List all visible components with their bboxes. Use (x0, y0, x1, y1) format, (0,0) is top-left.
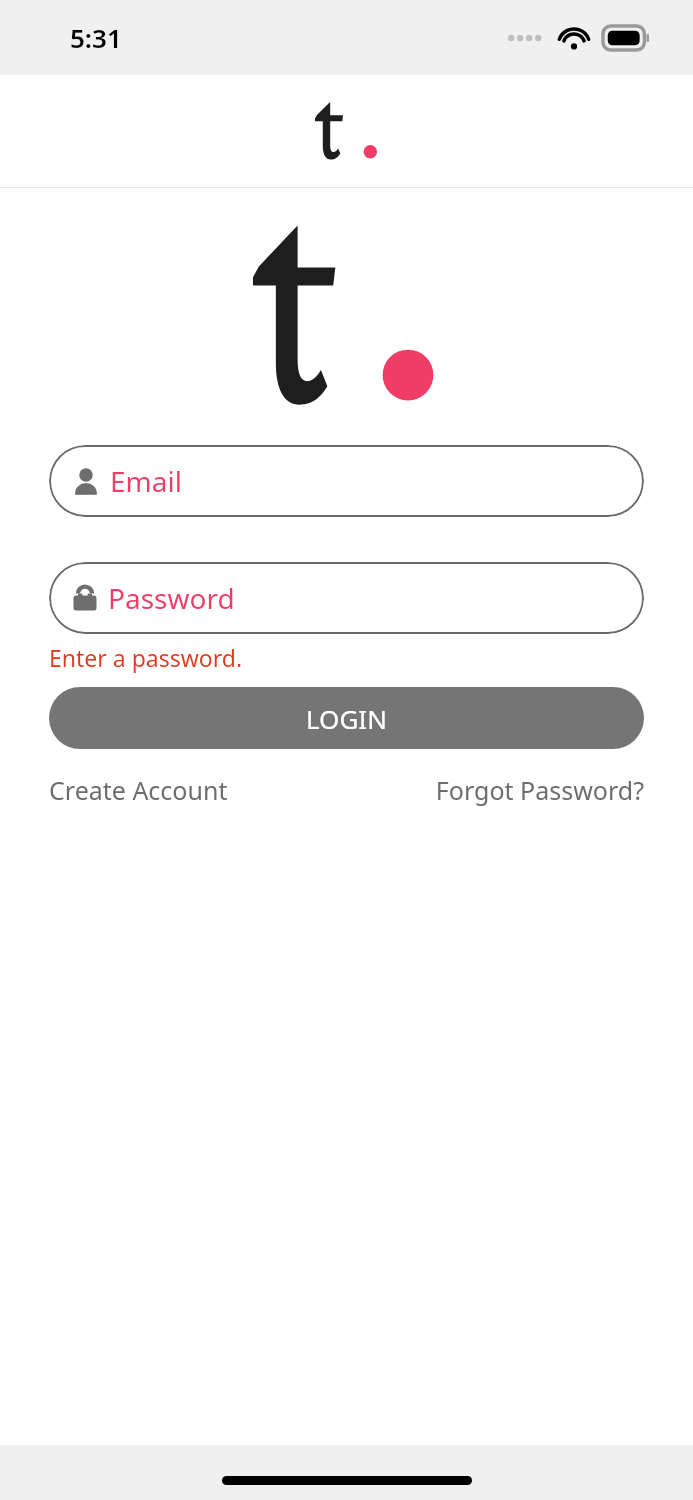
staticText: LOGIN (306, 701, 387, 736)
staticText: Create Account (49, 773, 228, 807)
button[interactable]: Home (312, 100, 382, 162)
button[interactable]: Password (49, 562, 644, 634)
staticText: Password (108, 579, 235, 617)
button[interactable]: LOGIN (49, 687, 644, 749)
button[interactable]: Forgot Password? (435, 767, 644, 813)
staticText: 5:31 (70, 20, 122, 55)
staticText: Forgot Password? (435, 773, 644, 807)
staticText: Email (110, 462, 182, 500)
button[interactable]: Email (49, 445, 644, 517)
staticText: Enter a password. (49, 642, 243, 673)
button[interactable]: Create Account (49, 767, 228, 813)
